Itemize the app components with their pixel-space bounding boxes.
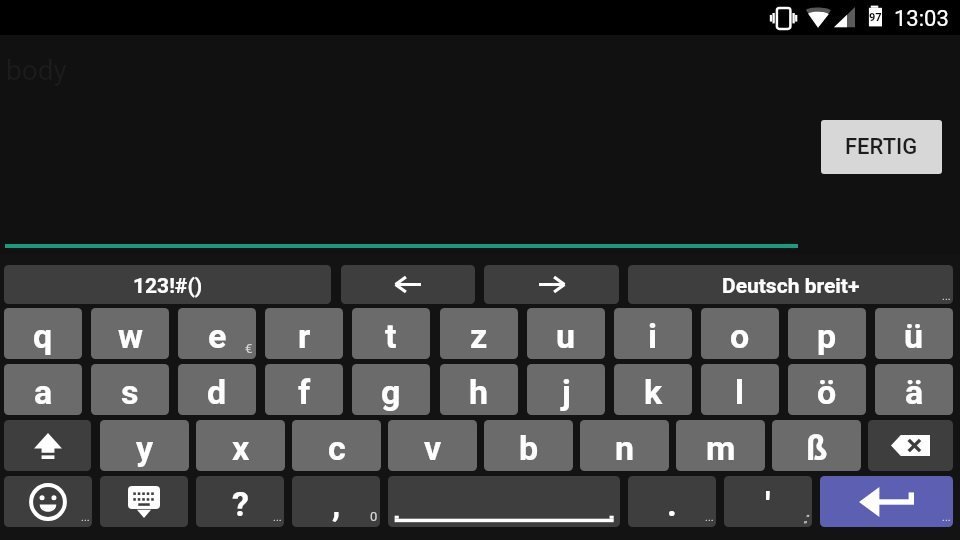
staticText: ö (817, 372, 837, 412)
button[interactable]: ß (772, 420, 861, 471)
button[interactable]: Move cursor right (484, 265, 619, 304)
staticText: v (424, 428, 442, 468)
staticText: e (208, 316, 227, 356)
button[interactable]: a (4, 364, 82, 415)
staticText: c (328, 428, 346, 468)
button[interactable]: y (100, 420, 189, 471)
button[interactable]: e (178, 308, 256, 359)
button[interactable]: r (265, 308, 343, 359)
button[interactable]: z (440, 308, 518, 359)
staticText: ... (942, 511, 951, 524)
button[interactable]: h (440, 364, 518, 415)
staticText: p (817, 316, 837, 356)
staticText: ' (765, 484, 771, 524)
staticText: g (381, 372, 401, 412)
staticText: q (33, 316, 53, 356)
button[interactable]: x (196, 420, 285, 471)
staticText: r (298, 316, 311, 356)
button[interactable]: s (91, 364, 169, 415)
staticText: ... (273, 511, 282, 524)
button[interactable]: v (388, 420, 477, 471)
staticText: FERTIG (845, 134, 918, 160)
button[interactable]: w (91, 308, 169, 359)
button[interactable]: ä (875, 364, 953, 415)
button[interactable]: u (527, 308, 605, 359)
button[interactable]: ü (875, 308, 953, 359)
button[interactable]: , (292, 476, 380, 527)
staticText: f (298, 372, 311, 412)
staticText: h (469, 372, 489, 412)
button[interactable]: ' (724, 476, 812, 527)
staticText: b (519, 428, 539, 468)
button[interactable]: c (292, 420, 381, 471)
staticText: z (470, 316, 488, 356)
staticText: k (644, 372, 663, 412)
staticText: a (34, 372, 53, 412)
staticText: d (207, 372, 227, 412)
staticText: m (706, 428, 736, 468)
staticText: x (232, 428, 250, 468)
staticText: n (615, 428, 635, 468)
button[interactable]: Emoji (4, 476, 92, 527)
staticText: j (562, 372, 571, 412)
button[interactable]: 123!#() (4, 265, 331, 304)
button[interactable]: d (178, 364, 256, 415)
staticText: body (6, 54, 67, 87)
staticText: y (136, 428, 154, 468)
staticText: t (385, 316, 397, 356)
button[interactable]: p (788, 308, 866, 359)
staticText: l (735, 372, 745, 412)
staticText: u (556, 316, 576, 356)
staticText: . (667, 484, 677, 524)
button[interactable]: . (628, 476, 716, 527)
button[interactable]: t (352, 308, 430, 359)
button[interactable]: ö (788, 364, 866, 415)
staticText: ... (942, 290, 951, 303)
button[interactable]: Shift (4, 420, 91, 471)
button[interactable]: Deutsch breit+ (628, 265, 953, 304)
button[interactable]: q (4, 308, 82, 359)
button[interactable]: m (676, 420, 765, 471)
staticText: ß (806, 428, 828, 468)
staticText: s (121, 372, 139, 412)
button[interactable]: Hide keyboard (100, 476, 188, 527)
button[interactable]: Enter (820, 476, 953, 527)
button[interactable]: i (614, 308, 692, 359)
button[interactable]: Space (388, 476, 620, 527)
staticText: 123!#() (133, 274, 203, 299)
staticText: o (730, 316, 750, 356)
button[interactable]: j (527, 364, 605, 415)
staticText: Deutsch breit+ (722, 274, 860, 299)
button[interactable]: o (701, 308, 779, 359)
button[interactable]: Backspace (868, 420, 953, 471)
staticText: ... (81, 511, 90, 524)
button[interactable]: g (352, 364, 430, 415)
button[interactable]: k (614, 364, 692, 415)
staticText: „“ (804, 514, 810, 525)
button[interactable]: ? (196, 476, 284, 527)
staticText: ä (905, 372, 924, 412)
button[interactable]: l (701, 364, 779, 415)
staticText: ? (232, 484, 249, 524)
staticText: 97 (869, 11, 882, 24)
staticText: i (648, 316, 658, 356)
staticText: 13:03 (894, 6, 949, 32)
staticText: 0 (370, 509, 378, 524)
staticText: , (332, 484, 341, 524)
button[interactable]: f (265, 364, 343, 415)
staticText: € (245, 341, 253, 356)
button[interactable]: FERTIG (821, 120, 942, 174)
button[interactable]: b (484, 420, 573, 471)
staticText: ... (705, 511, 714, 524)
button[interactable]: n (580, 420, 669, 471)
staticText: ü (904, 316, 924, 356)
staticText: w (118, 316, 143, 356)
button[interactable]: Move cursor left (341, 265, 475, 304)
